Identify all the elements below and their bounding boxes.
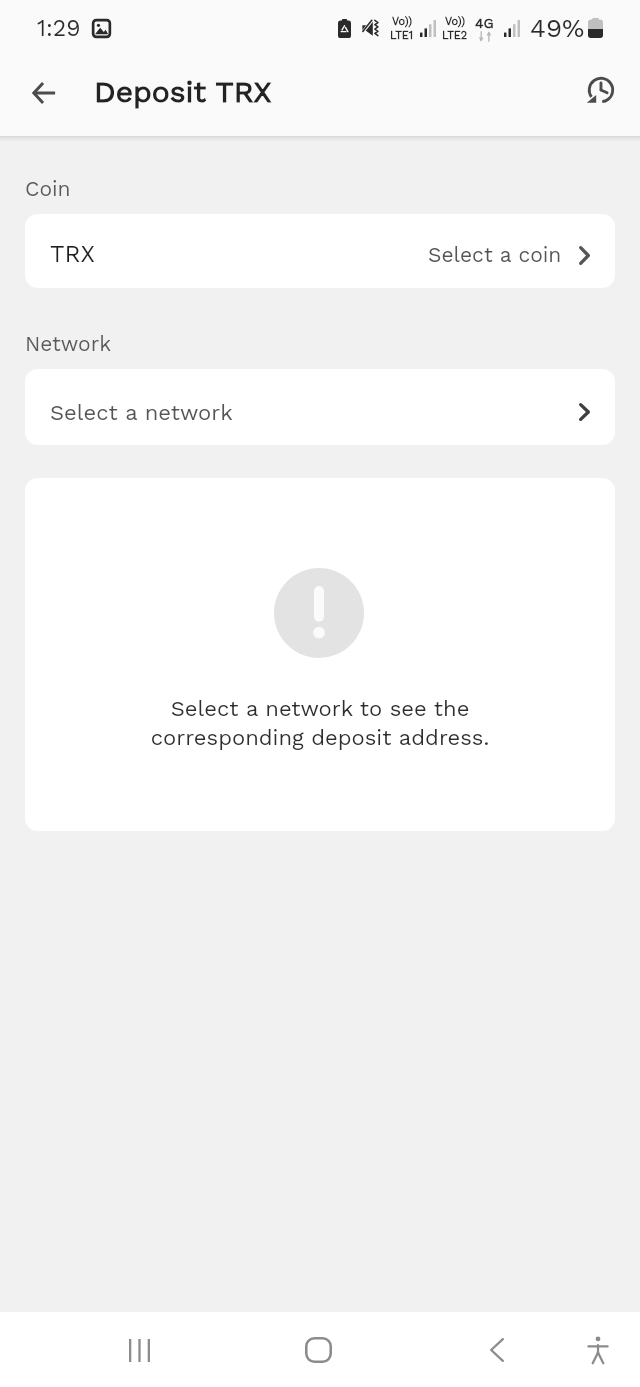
staticText: TRX xyxy=(50,240,95,268)
button[interactable]: Home xyxy=(282,1314,354,1386)
staticText: 4G xyxy=(475,15,494,31)
button[interactable]: TRX xyxy=(25,214,615,288)
staticText: Select a network to see the correspondin… xyxy=(25,696,615,750)
staticText: Vo)) xyxy=(392,15,413,28)
staticText: 49% xyxy=(530,13,585,43)
button[interactable]: Recent apps xyxy=(103,1314,175,1386)
staticText: 1:29 xyxy=(37,15,81,42)
staticText: Deposit TRX xyxy=(94,74,272,109)
staticText: Select a coin xyxy=(428,242,562,267)
staticText: LTE2 xyxy=(442,29,468,42)
button[interactable]: Transaction history xyxy=(566,65,629,128)
staticText: LTE1 xyxy=(390,29,414,42)
button[interactable]: Select a network xyxy=(25,369,615,445)
button[interactable]: Accessibility xyxy=(562,1314,634,1386)
staticText: Network xyxy=(25,331,112,356)
staticText: Coin xyxy=(25,176,71,201)
staticText: Select a network xyxy=(50,400,233,426)
staticText: Vo)) xyxy=(445,15,466,28)
button[interactable]: Back xyxy=(461,1314,533,1386)
button[interactable]: Back xyxy=(12,65,75,128)
